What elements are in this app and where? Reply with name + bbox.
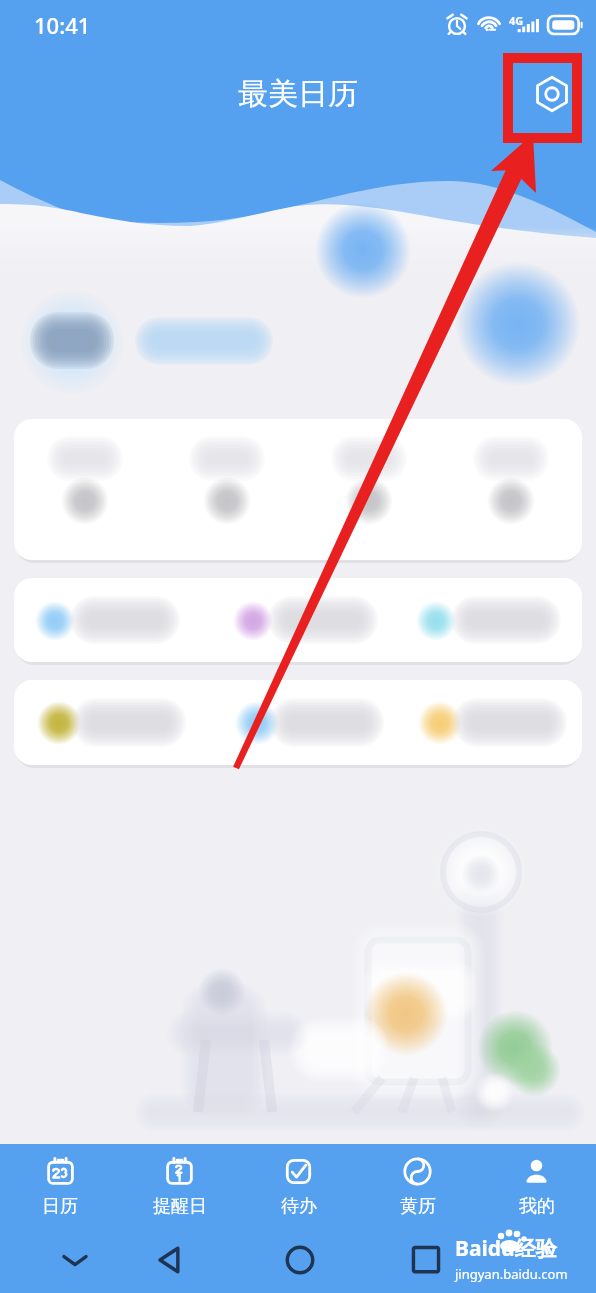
- button[interactable]: 待办: [239, 1144, 358, 1222]
- button[interactable]: 日历: [0, 1144, 120, 1222]
- button[interactable]: Hide keyboard: [56, 1241, 94, 1279]
- staticText: 日历: [42, 1195, 78, 1218]
- button[interactable]: Home: [281, 1241, 319, 1279]
- button[interactable]: Settings: [524, 66, 580, 122]
- button[interactable]: 提醒日: [120, 1144, 239, 1222]
- staticText: jingyan.baidu.com: [455, 1265, 568, 1283]
- button[interactable]: Back: [152, 1241, 190, 1279]
- staticText: 待办: [281, 1195, 317, 1218]
- button[interactable]: Recents: [407, 1241, 445, 1279]
- staticText: 黄历: [400, 1195, 436, 1218]
- staticText: 10:41: [34, 10, 91, 40]
- staticText: 我的: [519, 1195, 555, 1218]
- button[interactable]: 我的: [477, 1144, 596, 1222]
- staticText: 提醒日: [153, 1195, 207, 1218]
- staticText: Baidu经验: [455, 1234, 557, 1263]
- button[interactable]: 黄历: [358, 1144, 477, 1222]
- staticText: 4G: [509, 13, 524, 28]
- staticText: 最美日历: [238, 75, 358, 113]
